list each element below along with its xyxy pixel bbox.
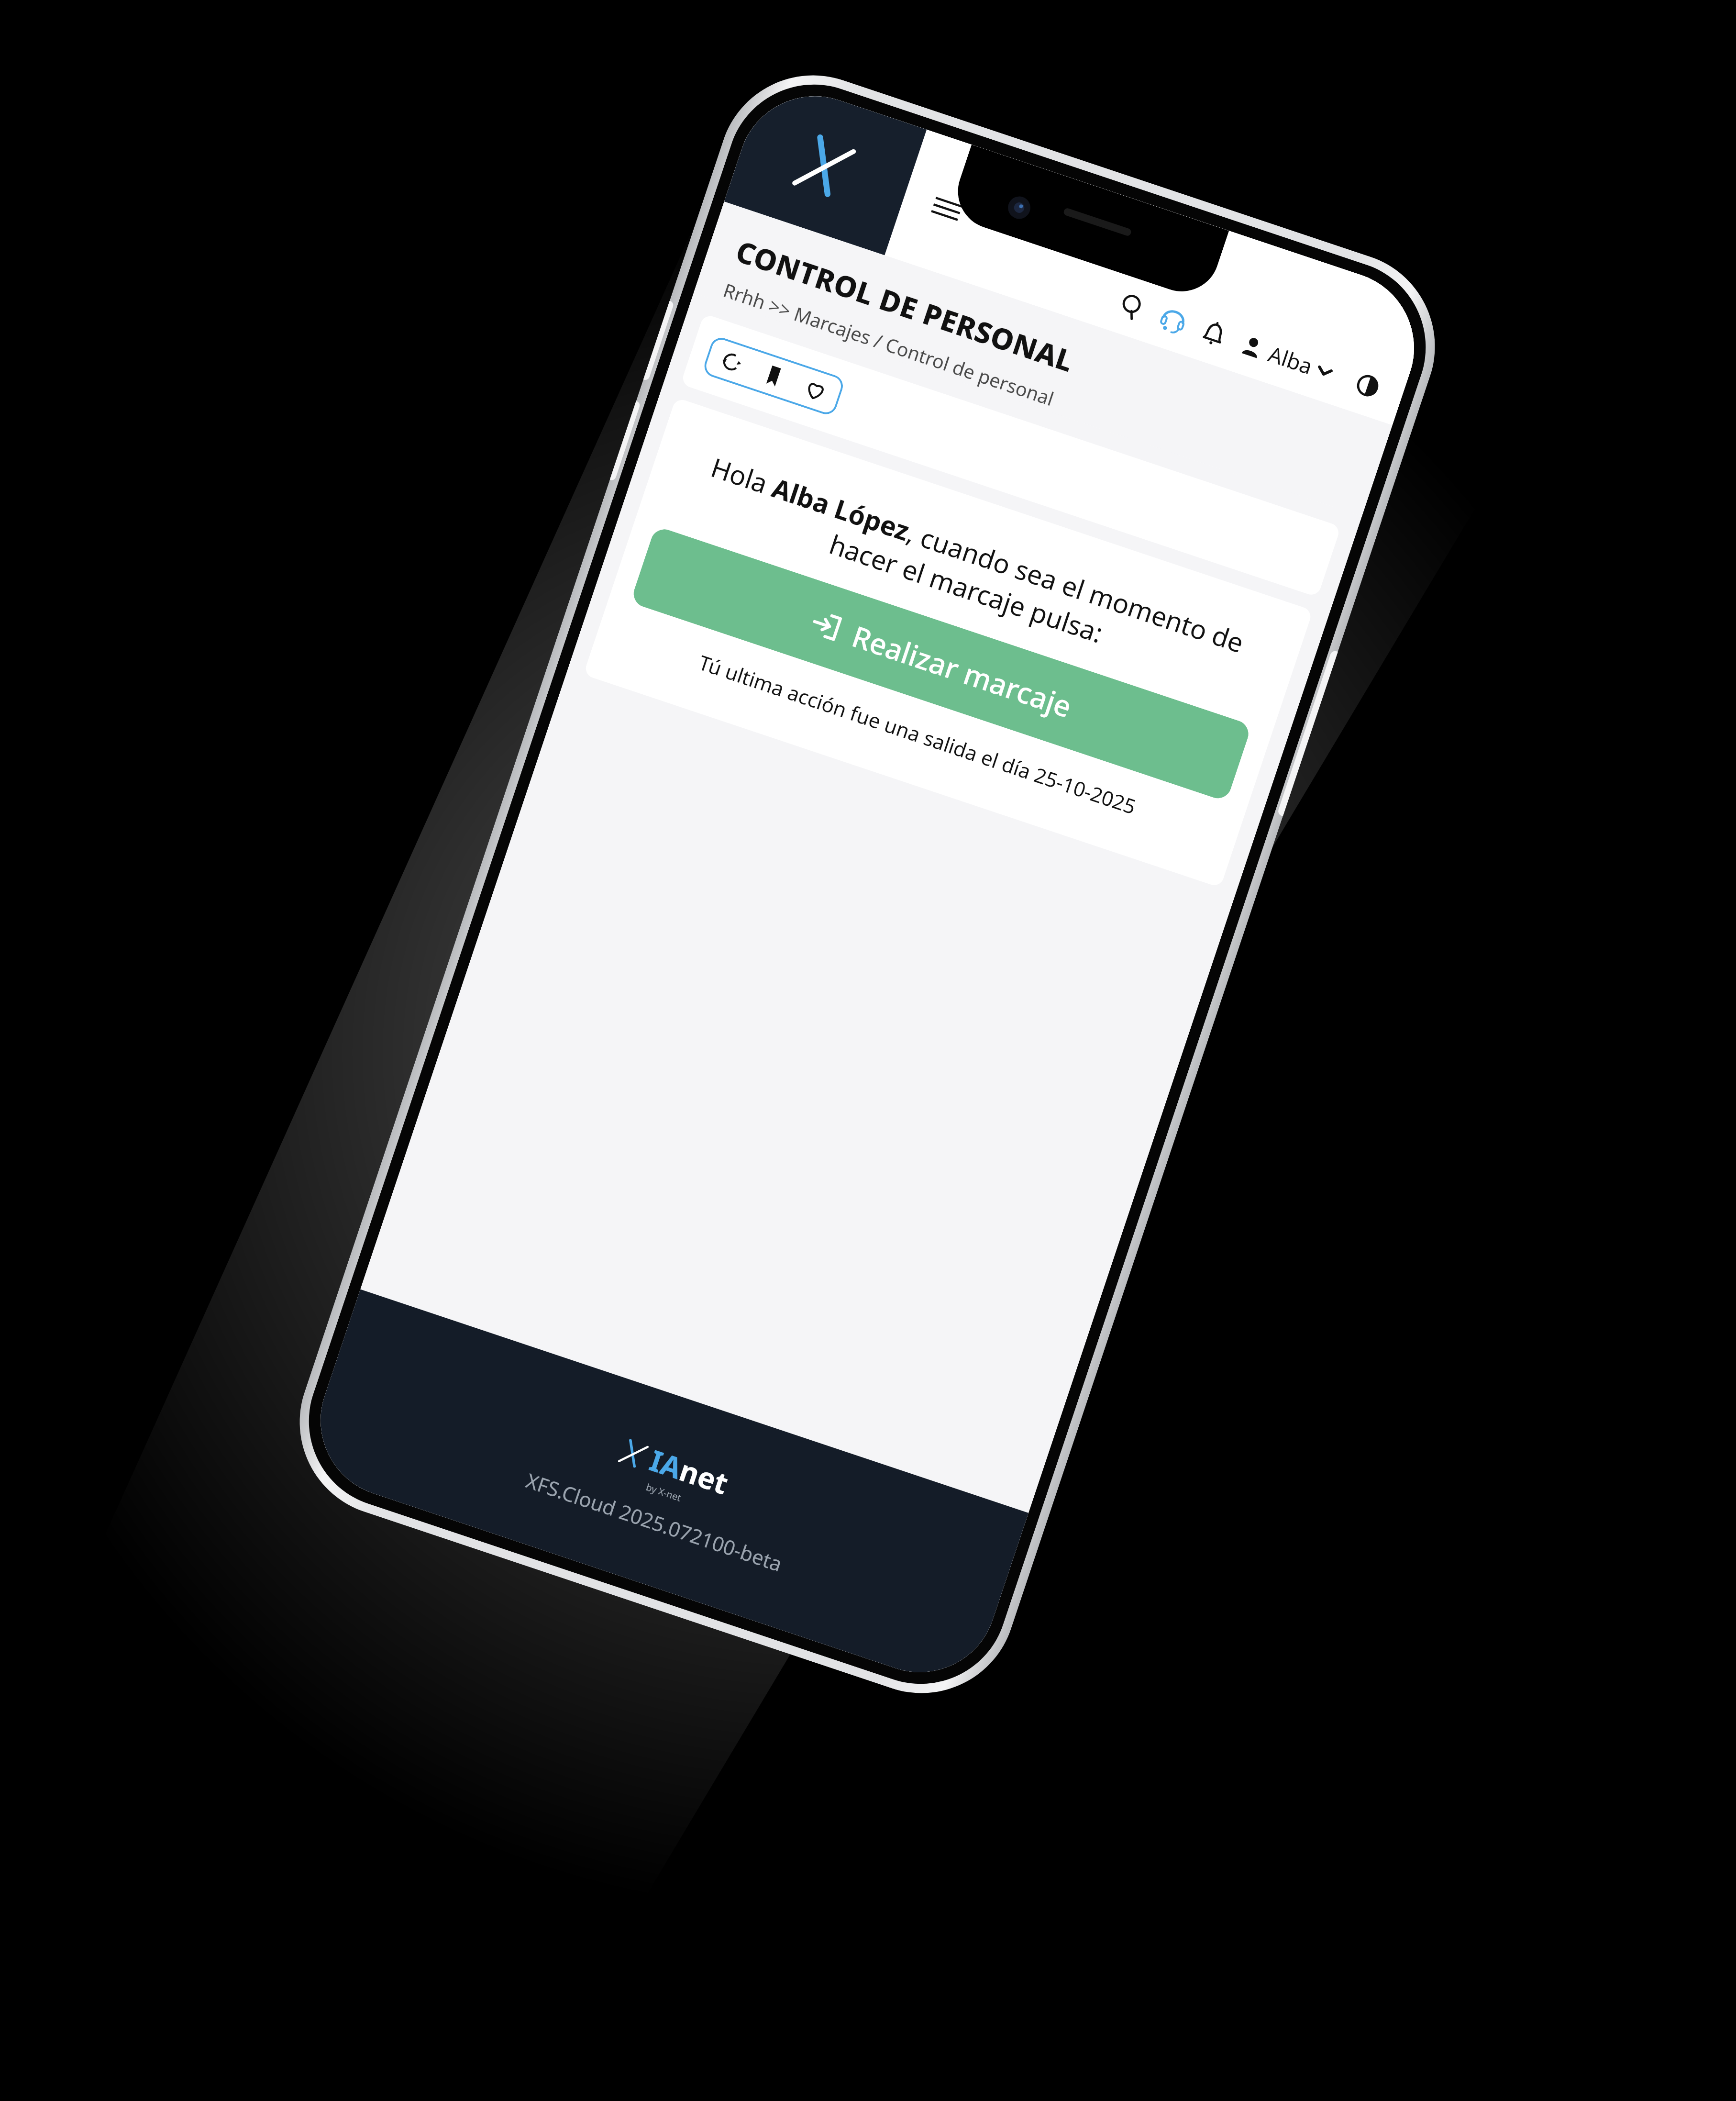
staticText: Hola Alba López, cuando sea el momento d… bbox=[662, 438, 1282, 705]
button[interactable]: Toggle theme bbox=[1343, 361, 1392, 410]
button[interactable]: Support bbox=[1148, 296, 1198, 345]
button[interactable]: Bookmark bbox=[756, 358, 791, 394]
staticText: by X-net bbox=[645, 1480, 683, 1504]
button[interactable]: Refresh bbox=[714, 344, 749, 380]
button[interactable]: Realizar marcaje bbox=[630, 526, 1252, 802]
staticText: Rrhh >> Marcajes / Control de personal bbox=[720, 277, 1058, 412]
staticText: XFS.Cloud 2025.072100-beta bbox=[523, 1466, 786, 1578]
button[interactable]: X-IAnet home bbox=[724, 76, 927, 255]
button[interactable]: Menu bbox=[918, 180, 976, 238]
button[interactable]: Refresh bbox=[701, 335, 846, 417]
button[interactable]: Search bbox=[1108, 282, 1157, 332]
staticText: Tú ultima acción fue una salida el día 2… bbox=[695, 648, 1140, 821]
staticText: IAnet bbox=[645, 1440, 734, 1503]
staticText: Alba bbox=[1265, 339, 1317, 381]
staticText: CONTROL DE PERSONAL bbox=[731, 231, 1079, 381]
button[interactable]: Favourite bbox=[798, 372, 833, 408]
staticText: Realizar marcaje bbox=[847, 616, 1077, 726]
button[interactable]: Alba bbox=[1230, 324, 1342, 392]
button[interactable]: Notifications bbox=[1189, 309, 1239, 359]
